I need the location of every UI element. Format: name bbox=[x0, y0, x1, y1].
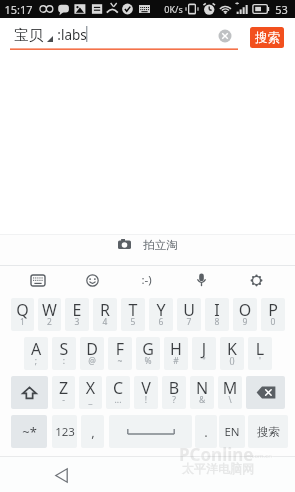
staticText: 搜索 bbox=[257, 425, 280, 439]
button[interactable]: I bbox=[205, 298, 229, 331]
button[interactable]: H bbox=[164, 337, 188, 370]
button[interactable]: G bbox=[136, 337, 160, 370]
staticText: J bbox=[192, 338, 216, 360]
staticText: L bbox=[248, 338, 272, 360]
staticText: F bbox=[108, 338, 132, 360]
staticText: B bbox=[162, 377, 186, 399]
staticText: 2 bbox=[38, 316, 61, 328]
staticText: PConline bbox=[179, 443, 254, 466]
staticText: 7 bbox=[177, 316, 201, 328]
staticText: 1 bbox=[11, 316, 34, 328]
button[interactable]: F bbox=[108, 337, 132, 370]
button[interactable]: J bbox=[192, 337, 216, 370]
staticText: 5 bbox=[121, 316, 145, 328]
button[interactable]: V bbox=[134, 376, 158, 409]
button[interactable]: Y bbox=[149, 298, 173, 331]
staticText: , bbox=[91, 423, 95, 441]
button[interactable]: Numbers bbox=[52, 415, 77, 448]
staticText: - bbox=[52, 394, 75, 406]
staticText: 6 bbox=[149, 316, 173, 328]
staticText: P bbox=[261, 299, 285, 321]
button[interactable]: S bbox=[52, 337, 76, 370]
staticText: ; bbox=[24, 355, 48, 367]
button[interactable]: Symbols bbox=[11, 415, 47, 448]
staticText: 太平洋电脑网 bbox=[182, 461, 254, 476]
staticText: :labs bbox=[57, 26, 87, 44]
button[interactable]: A bbox=[24, 337, 48, 370]
staticText: 15:17 bbox=[4, 2, 33, 17]
staticText: ? bbox=[162, 394, 186, 406]
button[interactable]: Comma bbox=[81, 415, 104, 448]
button[interactable]: Search bbox=[248, 415, 288, 448]
button[interactable]: R bbox=[93, 298, 117, 331]
staticText: U bbox=[177, 299, 201, 321]
staticText: G bbox=[136, 338, 160, 360]
staticText: N bbox=[190, 377, 214, 399]
staticText: 3 bbox=[65, 316, 89, 328]
button[interactable]: B bbox=[162, 376, 186, 409]
staticText: E bbox=[65, 299, 89, 321]
staticText: EN bbox=[224, 424, 240, 440]
staticText: 拍立淘 bbox=[143, 238, 178, 252]
button[interactable]: D bbox=[80, 337, 104, 370]
staticText: 搜索 bbox=[255, 30, 280, 46]
staticText: C bbox=[106, 377, 130, 399]
button[interactable]: Back bbox=[51, 465, 71, 485]
staticText: 9 bbox=[233, 316, 257, 328]
staticText: " bbox=[192, 355, 216, 367]
button[interactable]: 搜索 bbox=[250, 27, 284, 48]
button[interactable]: Keyboard layout bbox=[11, 266, 65, 294]
staticText: D bbox=[80, 338, 104, 360]
button[interactable]: Language bbox=[219, 415, 245, 448]
button[interactable]: U bbox=[177, 298, 201, 331]
staticText: 0K/s bbox=[164, 3, 183, 15]
button[interactable]: T bbox=[121, 298, 145, 331]
staticText: . bbox=[204, 423, 208, 441]
button[interactable]: 拍立淘 bbox=[0, 235, 295, 265]
staticText: K bbox=[220, 338, 244, 360]
button[interactable]: Z bbox=[52, 376, 75, 409]
staticText: # bbox=[164, 355, 188, 367]
staticText: ~ bbox=[108, 355, 132, 367]
staticText: V bbox=[134, 377, 158, 399]
button[interactable]: W bbox=[38, 298, 61, 331]
staticText: 4 bbox=[93, 316, 117, 328]
button[interactable]: Clear text bbox=[218, 29, 232, 43]
button[interactable]: Space bbox=[109, 415, 192, 448]
button[interactable]: E bbox=[65, 298, 89, 331]
staticText: Y bbox=[149, 299, 173, 321]
staticText: A bbox=[24, 338, 48, 360]
button[interactable]: Voice input bbox=[174, 266, 229, 294]
button[interactable]: Emoji bbox=[65, 266, 119, 294]
button[interactable]: L bbox=[248, 337, 272, 370]
staticText: _ bbox=[79, 394, 102, 406]
button[interactable]: P bbox=[261, 298, 285, 331]
staticText: ... bbox=[106, 394, 130, 406]
button[interactable]: K bbox=[220, 337, 244, 370]
staticText: : bbox=[52, 355, 76, 367]
button[interactable]: O bbox=[233, 298, 257, 331]
staticText: 8 bbox=[205, 316, 229, 328]
button[interactable]: X bbox=[79, 376, 102, 409]
staticText: ' bbox=[248, 355, 272, 367]
staticText: @ bbox=[80, 355, 104, 367]
button[interactable]: Settings bbox=[229, 266, 284, 294]
staticText: () bbox=[220, 355, 244, 367]
button[interactable]: Shift bbox=[11, 376, 48, 409]
staticText: .com.cn bbox=[250, 452, 272, 460]
staticText: S bbox=[52, 338, 76, 360]
button[interactable]: Period bbox=[195, 415, 217, 448]
button[interactable]: N bbox=[190, 376, 214, 409]
staticText: 0 bbox=[261, 316, 285, 328]
staticText: 53 bbox=[275, 2, 288, 17]
staticText: ~* bbox=[22, 423, 37, 441]
button[interactable]: Backspace bbox=[246, 376, 285, 409]
staticText: 宝贝 bbox=[14, 26, 43, 44]
button[interactable]: Text emoticons bbox=[119, 266, 174, 294]
staticText: \ bbox=[218, 394, 242, 406]
staticText: H bbox=[164, 338, 188, 360]
button[interactable]: C bbox=[106, 376, 130, 409]
staticText: & bbox=[190, 394, 214, 406]
button[interactable]: M bbox=[218, 376, 242, 409]
button[interactable]: Q bbox=[11, 298, 34, 331]
